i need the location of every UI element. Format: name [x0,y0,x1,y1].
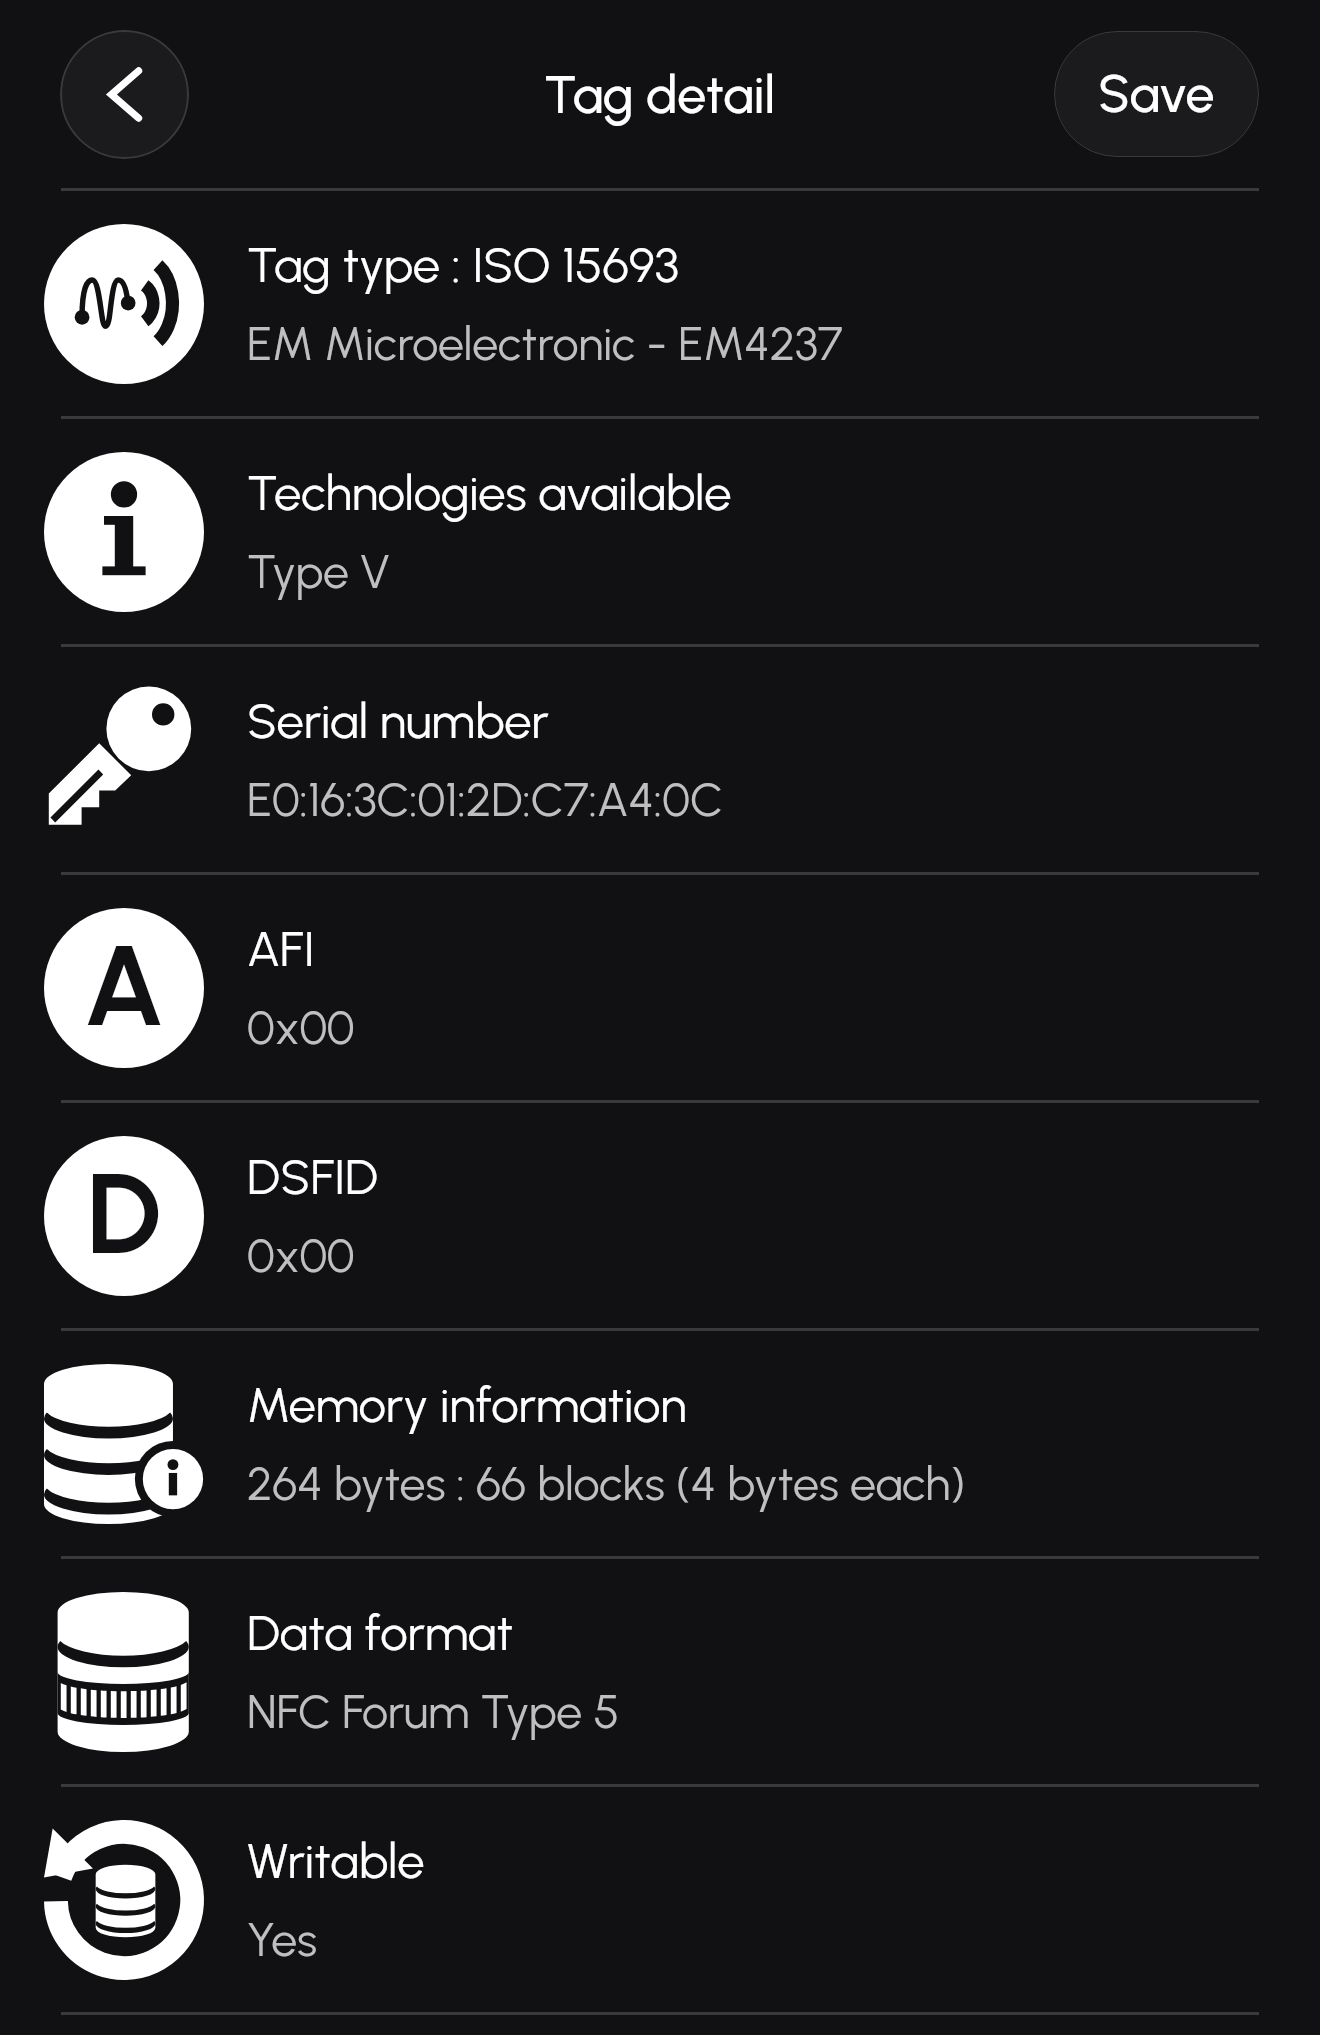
staticText: AFI [247,919,315,978]
staticText: Save [1098,63,1215,125]
staticText: DSFID [247,1147,378,1206]
button[interactable]: Technologies available [0,419,1320,644]
button[interactable]: Memory information [0,1331,1320,1556]
staticText: Data format [247,1603,514,1662]
staticText: Writable [247,1831,425,1890]
staticText: D [86,1147,162,1281]
button[interactable]: Save [1054,31,1259,157]
button[interactable]: D [0,1103,1320,1328]
staticText: Serial number [247,691,549,750]
staticText: A [83,919,165,1053]
button[interactable]: Data format [0,1559,1320,1784]
staticText: Memory information [247,1375,687,1434]
staticText: 0x00 [247,1000,355,1056]
staticText: Technologies available [247,463,732,522]
staticText: 264 bytes : 66 blocks (4 bytes each) [247,1456,966,1512]
staticText: E0:16:3C:01:2D:C7:A4:0C [247,772,723,828]
button[interactable]: A [0,875,1320,1100]
staticText: NFC Forum Type 5 [247,1684,620,1740]
staticText: EM Microelectronic - EM4237 [247,316,843,372]
button[interactable]: Serial number [0,647,1320,872]
staticText: Tag type : ISO 15693 [247,235,679,294]
button[interactable]: Tag type : ISO 15693 [0,191,1320,416]
staticText: Type V [247,544,390,600]
staticText: 0x00 [247,1228,355,1284]
button[interactable]: Back [60,30,189,159]
button[interactable]: Writable [0,1787,1320,2012]
staticText: Yes [247,1912,318,1968]
staticText: Tag detail [544,64,776,126]
